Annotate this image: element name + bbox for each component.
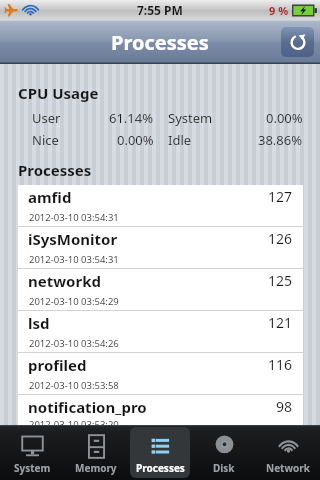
staticText: Network (266, 461, 310, 475)
staticText: 0.00% (266, 109, 303, 127)
staticText: Processes (111, 29, 209, 56)
staticText: 116 (268, 355, 293, 374)
button[interactable]: Network (258, 427, 318, 478)
staticText: 98 (276, 397, 293, 416)
staticText: 38.86% (258, 131, 303, 149)
button[interactable]: amfid (18, 185, 303, 227)
staticText: lsd (28, 313, 268, 333)
staticText: 2012-03-10 03:54:31 (29, 211, 119, 224)
staticText: 121 (268, 313, 293, 332)
staticText: 61.14% (109, 109, 154, 127)
staticText: 2012-03-10 03:54:26 (29, 337, 119, 350)
staticText: amfid (28, 187, 268, 207)
button[interactable]: Refresh (281, 27, 314, 57)
staticText: 2012-03-10 03:54:31 (29, 253, 119, 266)
button[interactable]: Disk (194, 427, 254, 478)
button[interactable]: networkd (18, 269, 303, 311)
staticText: 0.00% (117, 131, 154, 149)
staticText: Processes (136, 461, 185, 475)
button[interactable]: Memory (66, 427, 126, 478)
staticText: User (32, 109, 61, 127)
staticText: System (14, 461, 51, 475)
button[interactable]: lsd (18, 311, 303, 353)
staticText: networkd (28, 271, 268, 291)
staticText: Processes (18, 160, 92, 180)
button[interactable]: iSysMonitor (18, 227, 303, 269)
button[interactable]: notification_pro (18, 395, 303, 431)
staticText: 2012-03-10 03:53:20 (29, 418, 119, 431)
staticText: 125 (268, 271, 293, 290)
staticText: Idle (168, 131, 192, 149)
staticText: Nice (32, 131, 59, 149)
staticText: 126 (268, 229, 293, 248)
staticText: System (168, 109, 213, 127)
staticText: 2012-03-10 03:54:29 (29, 295, 119, 308)
staticText: 2012-03-10 03:53:58 (29, 379, 119, 392)
staticText: Memory (75, 461, 117, 475)
staticText: notification_pro (28, 397, 276, 417)
staticText: profiled (28, 355, 268, 375)
button[interactable]: System (2, 427, 62, 478)
staticText: 7:55 PM (137, 2, 183, 18)
staticText: 127 (268, 187, 293, 206)
button[interactable]: profiled (18, 353, 303, 395)
staticText: Disk (213, 461, 235, 475)
button[interactable]: Processes (130, 427, 190, 478)
staticText: iSysMonitor (28, 229, 268, 249)
staticText: 9 % (269, 3, 289, 18)
staticText: CPU Usage (18, 83, 99, 103)
